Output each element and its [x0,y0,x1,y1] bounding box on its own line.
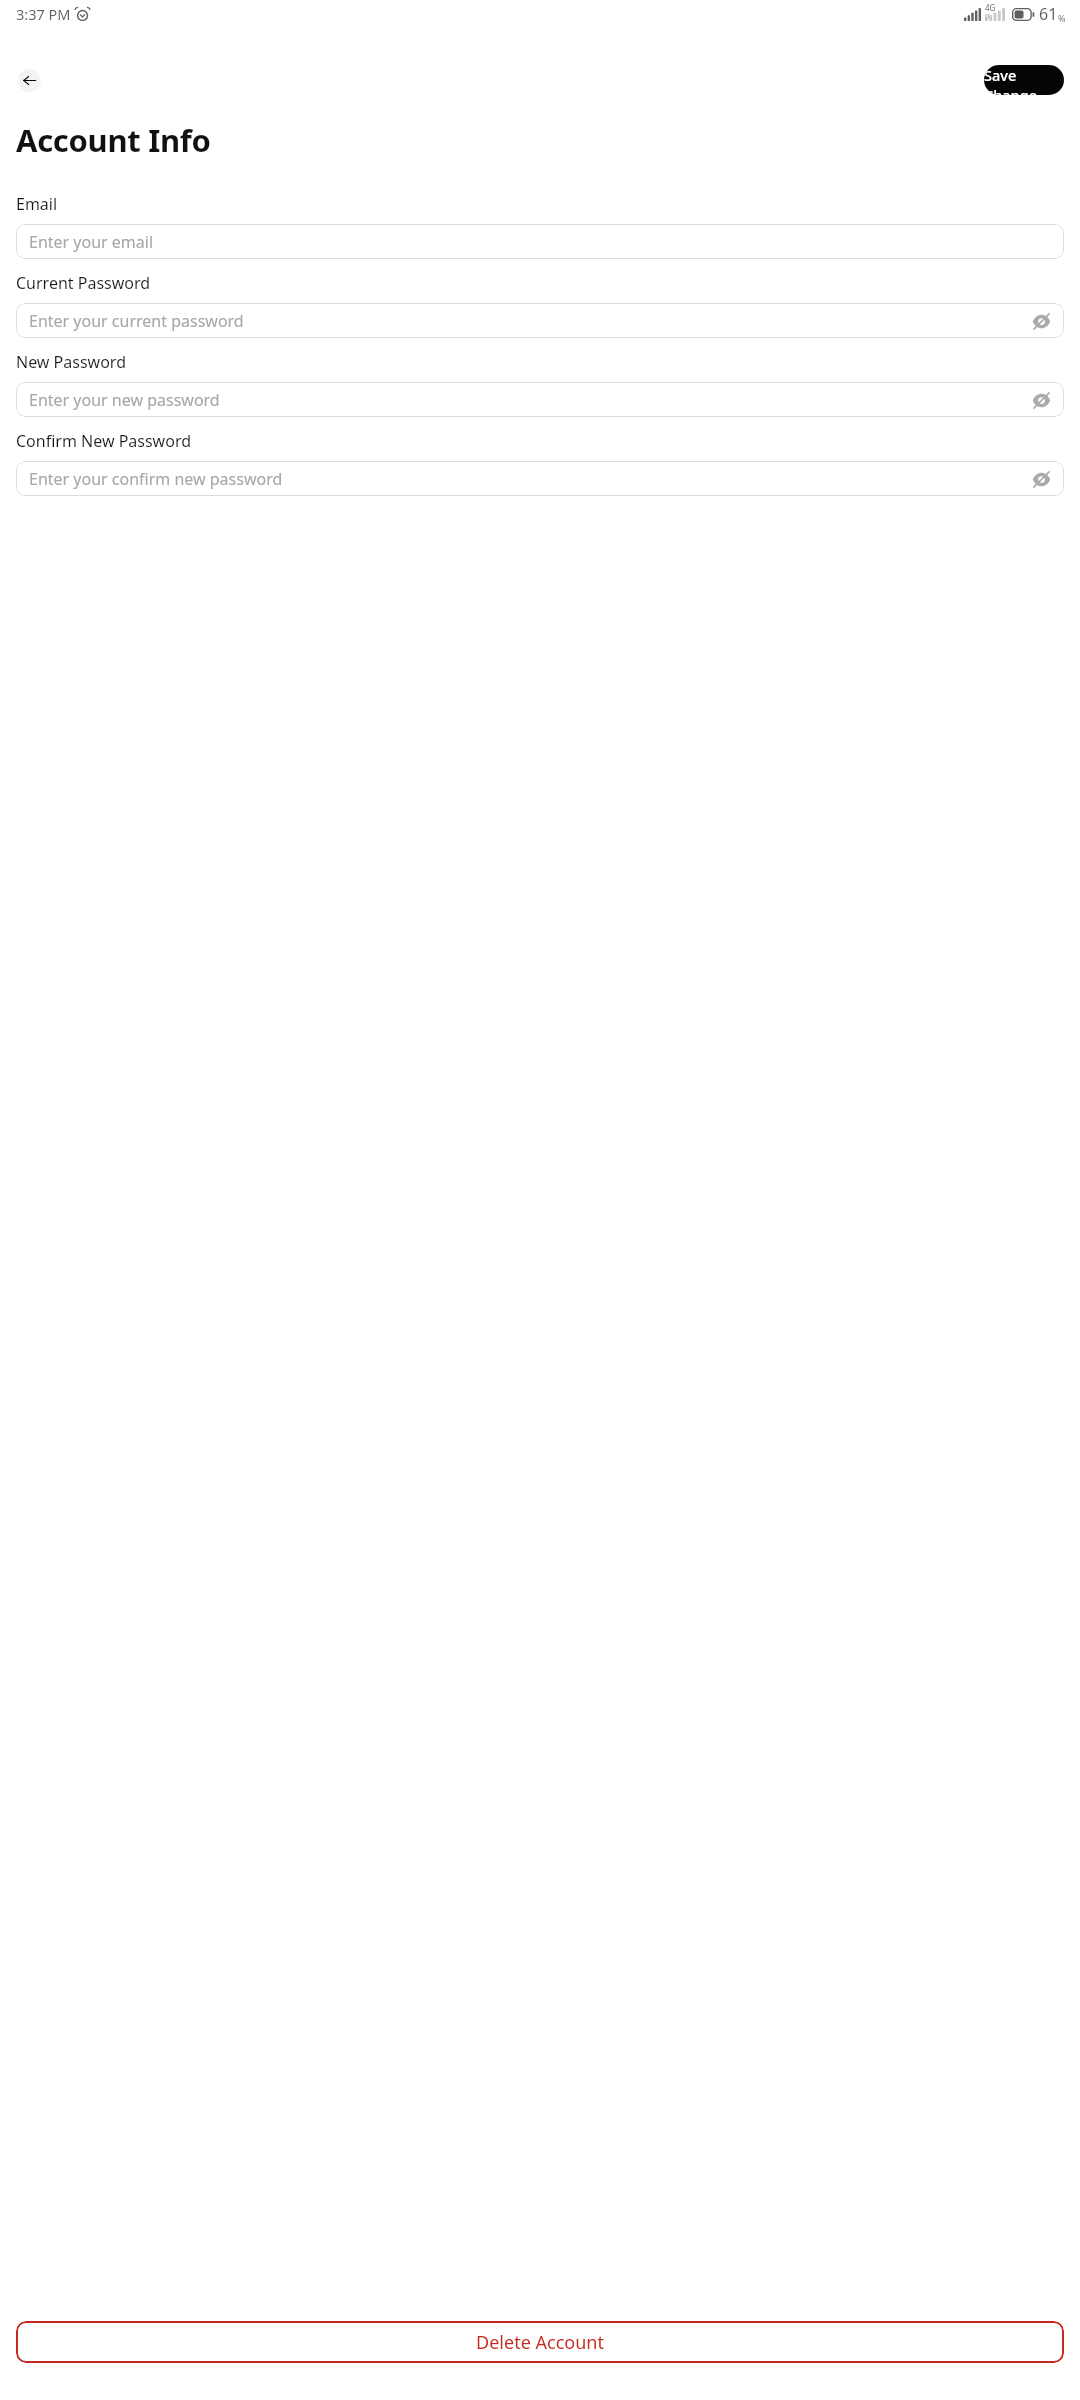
staticText: Current Password [16,272,151,294]
staticText: Enter your current password [29,310,244,332]
staticText: Account Info [16,119,211,161]
button[interactable]: Enter your email [16,224,1064,259]
button[interactable]: Back [18,69,41,92]
button[interactable]: Save Change [984,65,1064,95]
button[interactable]: Enter your confirm new password [16,461,1064,496]
staticText: Enter your email [29,231,154,253]
staticText: 61 [1039,3,1058,25]
staticText: Enter your confirm new password [29,468,283,490]
staticText: Confirm New Password [16,430,192,452]
staticText: % [1058,12,1066,24]
staticText: 3:37 PM [16,4,71,24]
button[interactable]: Show password [1031,469,1051,489]
staticText: New Password [16,351,126,373]
staticText: 4G [985,2,996,13]
button[interactable]: Delete Account [16,2321,1064,2363]
button[interactable]: Show password [1031,390,1051,410]
staticText: Email [16,193,58,215]
staticText: Save Change [984,65,1064,95]
button[interactable]: Enter your new password [16,382,1064,417]
staticText: Enter your new password [29,389,220,411]
staticText: Delete Account [476,2330,604,2355]
button[interactable]: Show password [1031,311,1051,331]
button[interactable]: Enter your current password [16,303,1064,338]
